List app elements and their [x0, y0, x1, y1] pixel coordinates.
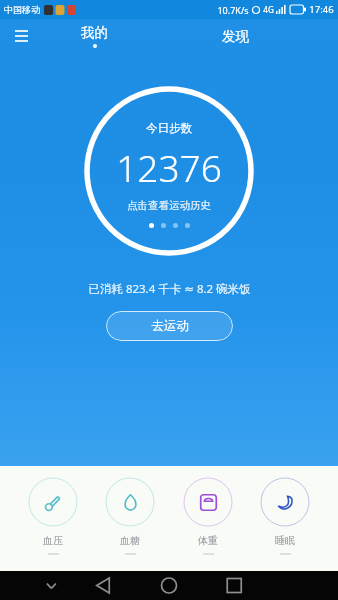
- staticText: 睡眠: [275, 534, 295, 547]
- button[interactable]: 今日步数: [84, 86, 254, 256]
- staticText: 我的: [81, 24, 108, 41]
- button[interactable]: 我的: [62, 19, 126, 53]
- staticText: 血糖: [120, 534, 140, 547]
- button[interactable]: 体重: [183, 477, 233, 555]
- staticText: 去运动: [151, 318, 189, 334]
- staticText: 血压: [43, 534, 63, 547]
- staticText: 发现: [222, 28, 249, 45]
- button[interactable]: 血糖: [105, 477, 155, 555]
- staticText: 10.7K/s: [217, 4, 249, 16]
- staticText: 体重: [198, 534, 218, 547]
- button[interactable]: 睡眠: [260, 477, 310, 555]
- staticText: 12376: [116, 142, 222, 192]
- button[interactable]: Menu: [6, 21, 36, 51]
- staticText: 4G: [263, 4, 274, 15]
- button[interactable]: 去运动: [106, 311, 233, 341]
- staticText: 已消耗 823.4 千卡 ≈ 8.2 碗米饭: [88, 281, 251, 297]
- staticText: 中国移动: [4, 4, 40, 15]
- button[interactable]: 发现: [203, 19, 267, 53]
- staticText: 今日步数: [146, 121, 192, 135]
- staticText: 点击查看运动历史: [127, 199, 211, 212]
- button[interactable]: 血压: [28, 477, 78, 555]
- staticText: 17:46: [309, 3, 334, 16]
